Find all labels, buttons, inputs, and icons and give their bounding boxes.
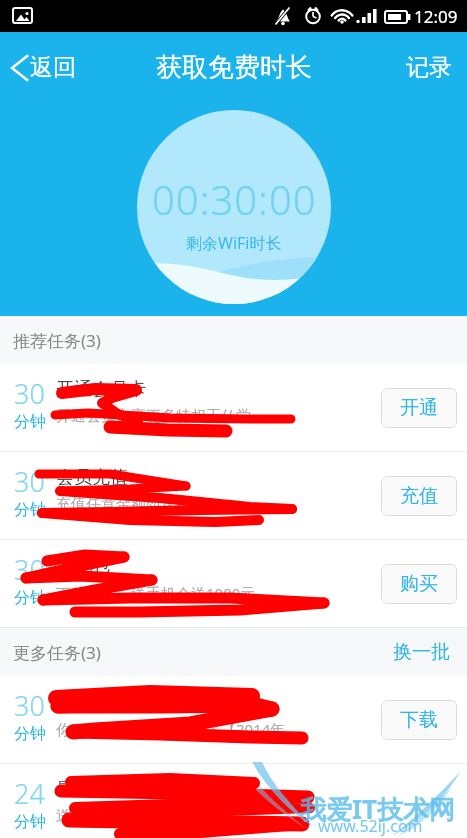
staticText: 剩余WiFi时长 <box>186 232 282 254</box>
staticText: 30 <box>14 551 45 588</box>
staticText: 30 <box>14 463 45 500</box>
staticText: 返回 <box>30 53 76 82</box>
staticText: 更多任务(3) <box>13 641 101 664</box>
staticText: 开通会员立享更多特权工仏学 <box>56 407 251 426</box>
staticText: 12:09 <box>414 5 458 28</box>
button[interactable]: 下载 <box>381 700 457 740</box>
staticText: 分钟 <box>14 412 46 432</box>
staticText: 分钟 <box>14 500 46 520</box>
staticText: 大礼包 <box>56 554 110 577</box>
staticText: 下载 <box>400 708 438 732</box>
staticText: 获取免费时长 <box>156 51 312 84</box>
staticText: 分钟 <box>14 812 46 832</box>
staticText: 00:30:00 <box>152 172 317 226</box>
button[interactable]: 充值 <box>381 476 457 516</box>
staticText: 分钟 <box>14 724 46 744</box>
button[interactable]: 开通 <box>381 388 457 428</box>
staticText: 分钟 <box>14 588 46 608</box>
button[interactable]: 30 <box>0 540 467 628</box>
staticText: www.52ij.com <box>318 815 423 837</box>
staticText: 充值任意金额即送礼 <box>56 495 191 514</box>
staticText: 开通 <box>400 396 438 420</box>
staticText: 30 <box>14 375 45 412</box>
staticText: 最全最新技术 <box>56 778 164 801</box>
button[interactable]: 30 <box>0 676 467 764</box>
staticText: 下载即可，送手机会送1000元 <box>56 583 256 603</box>
button[interactable]: 换一批 <box>376 630 467 674</box>
button[interactable]: 24 <box>0 764 467 838</box>
staticText: 30 <box>14 687 45 724</box>
staticText: 你可看到超值大礼包～！【2014年… <box>56 719 298 739</box>
staticText: 会员充值 <box>56 466 128 489</box>
staticText: 送给你的精彩内容 <box>56 807 176 826</box>
button[interactable]: 30 <box>0 364 467 452</box>
staticText: 我爱IT技术网 <box>300 791 456 827</box>
button[interactable]: 30 <box>0 452 467 540</box>
button[interactable]: 记录 <box>392 43 467 92</box>
button[interactable]: 购买 <box>381 564 457 604</box>
staticText: 购买 <box>400 572 438 596</box>
staticText: 开通会员卡 <box>56 378 146 401</box>
staticText: 推荐任务(3) <box>13 329 101 352</box>
staticText: 充值 <box>400 484 438 508</box>
button[interactable]: 返回 <box>0 53 86 82</box>
staticText: 24 <box>14 775 45 812</box>
